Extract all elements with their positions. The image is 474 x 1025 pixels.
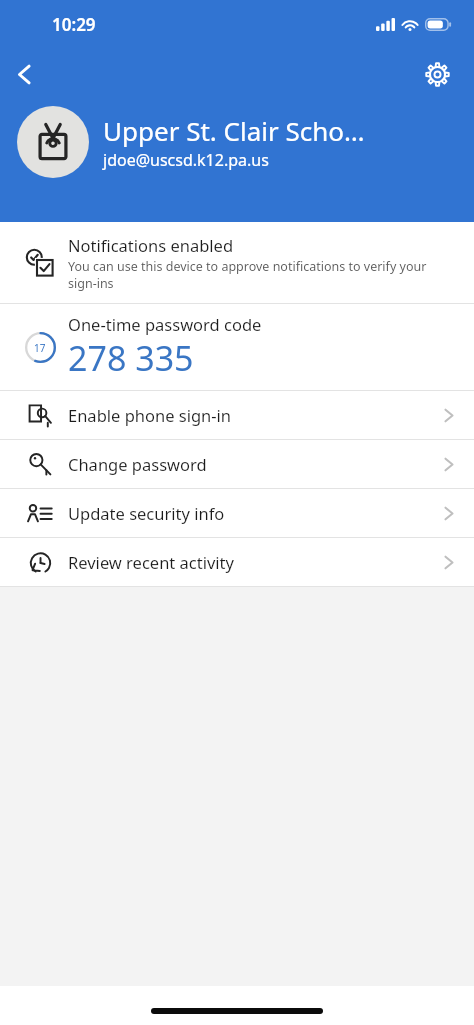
staticText: Review recent activity [68,551,444,573]
button[interactable]: Review recent activity [0,538,474,586]
staticText: 17 [34,341,46,355]
staticText: Update security info [68,502,444,524]
staticText: You can use this device to approve notif… [68,258,458,291]
button[interactable]: Update security info [0,489,474,537]
staticText: jdoe@uscsd.k12.pa.us [103,149,269,171]
button[interactable]: Settings [414,51,460,97]
staticText: Change password [68,453,444,475]
button[interactable]: 17 [0,304,474,390]
button[interactable]: Change password [0,440,474,488]
staticText: One-time password code [68,313,262,335]
staticText: Notifications enabled [68,234,234,256]
staticText: Enable phone sign-in [68,404,444,426]
staticText: Upper St. Clair Scho… [103,113,365,148]
button[interactable]: Back [0,50,48,98]
staticText: 278 335 [68,335,194,381]
button[interactable]: Notifications enabled [0,222,474,303]
staticText: 10:29 [52,13,96,36]
button[interactable]: Enable phone sign-in [0,391,474,439]
